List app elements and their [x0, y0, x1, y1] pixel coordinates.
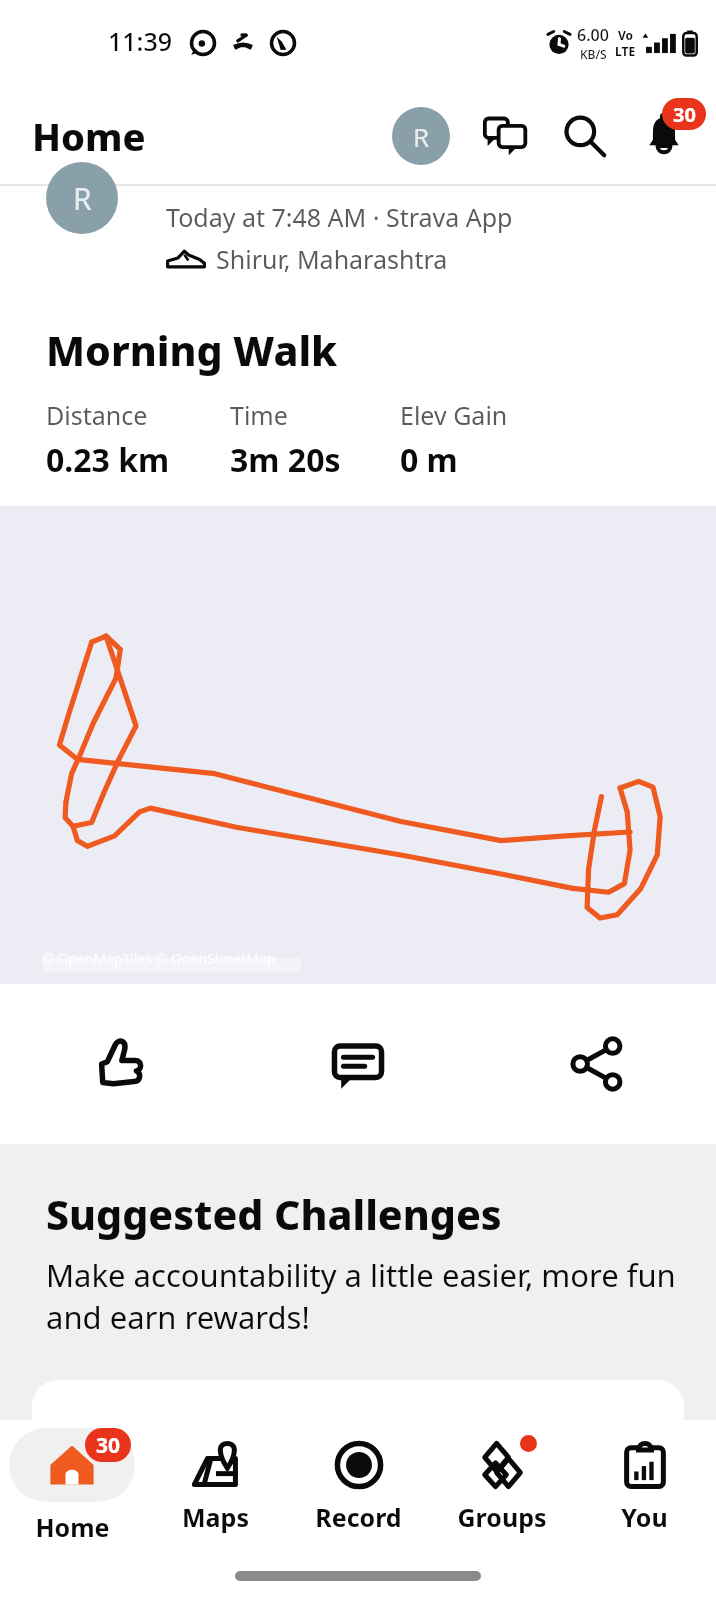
staticText: 0.23 km	[46, 438, 170, 482]
button[interactable]: Messages	[478, 108, 534, 164]
staticText: Morning Walk	[46, 322, 338, 378]
staticText: © OpenMapTiles © OpenStreetMap	[42, 949, 276, 968]
staticText: 6.00	[577, 24, 609, 46]
staticText: Time	[230, 398, 288, 432]
staticText: You	[621, 1500, 668, 1534]
staticText: R	[413, 119, 430, 154]
button[interactable]: Profile	[392, 107, 450, 165]
button[interactable]: Maps	[144, 1420, 287, 1552]
staticText: LTE	[615, 43, 636, 59]
button[interactable]: Search	[556, 108, 612, 164]
staticText: 30	[96, 1431, 121, 1460]
staticText: R	[73, 178, 92, 219]
button[interactable]: Groups	[430, 1420, 573, 1552]
button[interactable]: Notifications	[634, 106, 694, 166]
staticText: 3m 20s	[230, 438, 341, 482]
button[interactable]: Record	[287, 1420, 430, 1552]
staticText: Elev Gain	[400, 398, 508, 432]
staticText: Home	[32, 110, 146, 162]
staticText: 30	[673, 101, 696, 128]
staticText: Vo	[618, 27, 634, 43]
staticText: Suggested Challenges	[46, 1186, 502, 1242]
staticText: Maps	[182, 1500, 249, 1534]
staticText: 0 m	[400, 438, 458, 482]
staticText: Home	[35, 1510, 110, 1544]
staticText: KB/S	[580, 46, 607, 62]
button[interactable]: You	[573, 1420, 716, 1552]
button[interactable]: 30	[0, 1420, 144, 1552]
staticText: Make accountability a little easier, mor…	[46, 1254, 676, 1338]
staticText: Record	[315, 1500, 402, 1534]
button[interactable]: Share	[477, 984, 716, 1144]
staticText: 11:39	[108, 24, 173, 58]
button[interactable]: Comment	[238, 984, 477, 1144]
staticText: Shirur, Maharashtra	[216, 242, 448, 276]
staticText: Today at 7:48 AM · Strava App	[166, 200, 513, 234]
button[interactable]: Give kudos	[0, 984, 238, 1144]
staticText: Distance	[46, 398, 148, 432]
staticText: Groups	[457, 1500, 547, 1534]
